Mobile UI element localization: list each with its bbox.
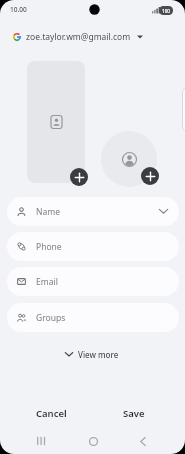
- button[interactable]: [101, 131, 157, 187]
- button[interactable]: zoe.taylor.wm@gmail.com: [8, 28, 158, 45]
- staticText: Cancel: [36, 407, 67, 420]
- staticText: Save: [123, 407, 145, 420]
- staticText: Name: [36, 206, 60, 218]
- button[interactable]: View more: [60, 346, 124, 362]
- button[interactable]: Email: [7, 267, 179, 296]
- button[interactable]: Cancel: [15, 402, 87, 424]
- staticText: zoe.taylor.wm@gmail.com: [26, 31, 131, 43]
- button[interactable]: Groups: [7, 303, 179, 332]
- staticText: Groups: [36, 312, 66, 324]
- button[interactable]: [33, 433, 50, 449]
- button[interactable]: [85, 433, 102, 449]
- button[interactable]: [27, 61, 85, 183]
- button[interactable]: [141, 167, 159, 185]
- staticText: 10.00: [10, 5, 27, 14]
- staticText: Phone: [36, 241, 62, 253]
- button[interactable]: [70, 168, 88, 186]
- staticText: Email: [36, 276, 58, 288]
- button[interactable]: [134, 433, 151, 449]
- staticText: View more: [78, 349, 119, 360]
- button[interactable]: Save: [98, 402, 170, 424]
- button[interactable]: Phone: [7, 232, 179, 261]
- staticText: 100: [162, 8, 170, 14]
- button[interactable]: Name: [7, 197, 179, 226]
